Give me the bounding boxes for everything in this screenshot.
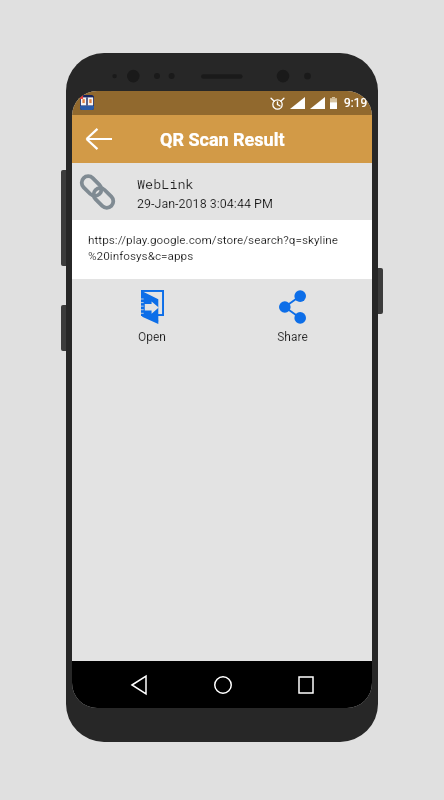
staticText: Share — [277, 330, 308, 344]
button[interactable]: WebLink — [72, 163, 372, 220]
button[interactable]: Open — [82, 290, 222, 344]
staticText: WebLink — [137, 175, 194, 193]
staticText: QR Scan Result — [160, 129, 285, 150]
staticText: Open — [138, 330, 166, 344]
button[interactable]: Recents — [287, 666, 325, 704]
button[interactable]: Back — [77, 117, 121, 161]
button[interactable]: Share — [222, 290, 362, 344]
staticText: 9:19 — [344, 96, 368, 110]
staticText: https://play.google.com/store/search?q=s… — [88, 233, 338, 263]
staticText: 29-Jan-2018 3:04:44 PM — [137, 196, 273, 211]
button[interactable]: Back — [120, 666, 158, 704]
button[interactable]: Home — [204, 666, 242, 704]
